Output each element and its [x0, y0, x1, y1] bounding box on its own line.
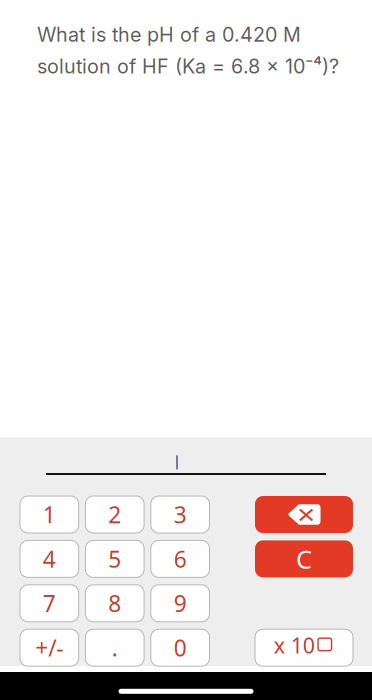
button[interactable]: 1	[20, 496, 79, 533]
button[interactable]: 5	[85, 540, 144, 577]
button[interactable]: 4	[20, 540, 79, 577]
staticText: solution of HF (Ka = 6.8 × 10⁻⁴)?	[37, 54, 339, 78]
staticText: C	[296, 542, 312, 576]
button[interactable]: .	[85, 629, 144, 666]
button[interactable]: 0	[151, 629, 209, 666]
staticText: .	[112, 633, 118, 663]
staticText: +/-	[35, 633, 63, 663]
button[interactable]: x 10	[255, 629, 353, 666]
staticText: 0	[174, 633, 187, 663]
staticText: 2	[108, 499, 121, 529]
staticText: 7	[43, 588, 56, 618]
button[interactable]: 7	[20, 585, 79, 622]
staticText: 9	[174, 588, 187, 618]
button[interactable]: +/-	[20, 629, 79, 666]
staticText: 5	[108, 544, 121, 574]
button[interactable]: C	[255, 540, 353, 577]
button[interactable]: Delete	[255, 496, 353, 533]
staticText: 1	[43, 499, 56, 529]
button[interactable]: 2	[85, 496, 144, 533]
staticText: What is the pH of a 0.420 M	[37, 23, 301, 46]
button[interactable]: 9	[151, 585, 209, 622]
button[interactable]: 8	[85, 585, 144, 622]
button[interactable]: 3	[151, 496, 209, 533]
staticText: 4	[43, 544, 56, 574]
staticText: x 10	[274, 631, 315, 659]
staticText: 3	[174, 499, 187, 529]
button[interactable]: 6	[151, 540, 209, 577]
staticText: 6	[174, 544, 187, 574]
staticText: 8	[108, 588, 121, 618]
